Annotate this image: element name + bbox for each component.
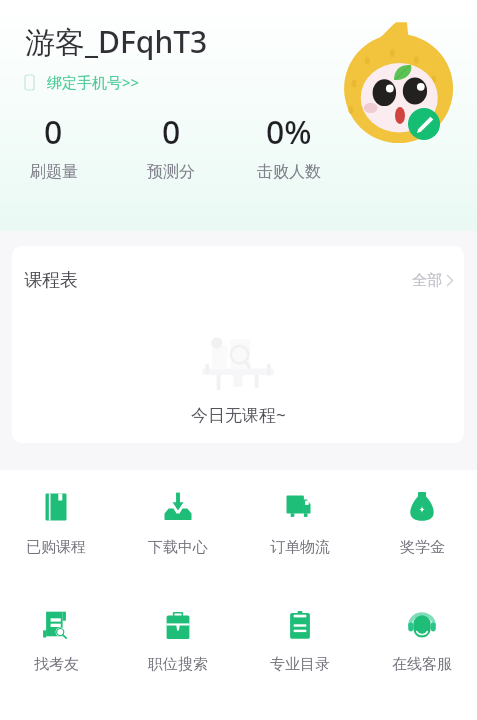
- staticText: 下载中心: [148, 538, 208, 557]
- button[interactable]: 专业目录: [239, 609, 361, 674]
- staticText: 刷题量: [30, 162, 78, 182]
- button[interactable]: 订单物流: [239, 492, 361, 557]
- staticText: 0%: [266, 110, 312, 154]
- staticText: 绑定手机号>>: [47, 72, 140, 92]
- staticText: 专业目录: [270, 655, 330, 674]
- button[interactable]: 下载中心: [117, 492, 239, 557]
- staticText: 全部: [412, 271, 442, 290]
- button[interactable]: 已购课程: [0, 492, 117, 557]
- staticText: 预测分: [147, 162, 195, 182]
- staticText: 订单物流: [270, 538, 330, 557]
- staticText: 在线客服: [392, 655, 452, 674]
- staticText: 游客_DFqhT3: [25, 21, 208, 62]
- button[interactable]: 在线客服: [361, 609, 477, 674]
- button[interactable]: 绑定手机号>>: [25, 72, 140, 92]
- button[interactable]: 职位搜索: [117, 609, 239, 674]
- staticText: 奖学金: [400, 538, 445, 557]
- staticText: 已购课程: [26, 538, 86, 557]
- button[interactable]: 编辑头像: [408, 108, 440, 140]
- button[interactable]: 全部: [412, 271, 453, 290]
- staticText: 今日无课程~: [191, 403, 286, 426]
- staticText: 找考友: [34, 655, 79, 674]
- staticText: 0: [162, 110, 181, 154]
- staticText: 课程表: [24, 269, 78, 292]
- staticText: 职位搜索: [148, 655, 208, 674]
- button[interactable]: 奖学金: [361, 492, 477, 557]
- staticText: 0: [44, 110, 63, 154]
- button[interactable]: 找考友: [0, 609, 117, 674]
- staticText: 击败人数: [257, 162, 321, 182]
